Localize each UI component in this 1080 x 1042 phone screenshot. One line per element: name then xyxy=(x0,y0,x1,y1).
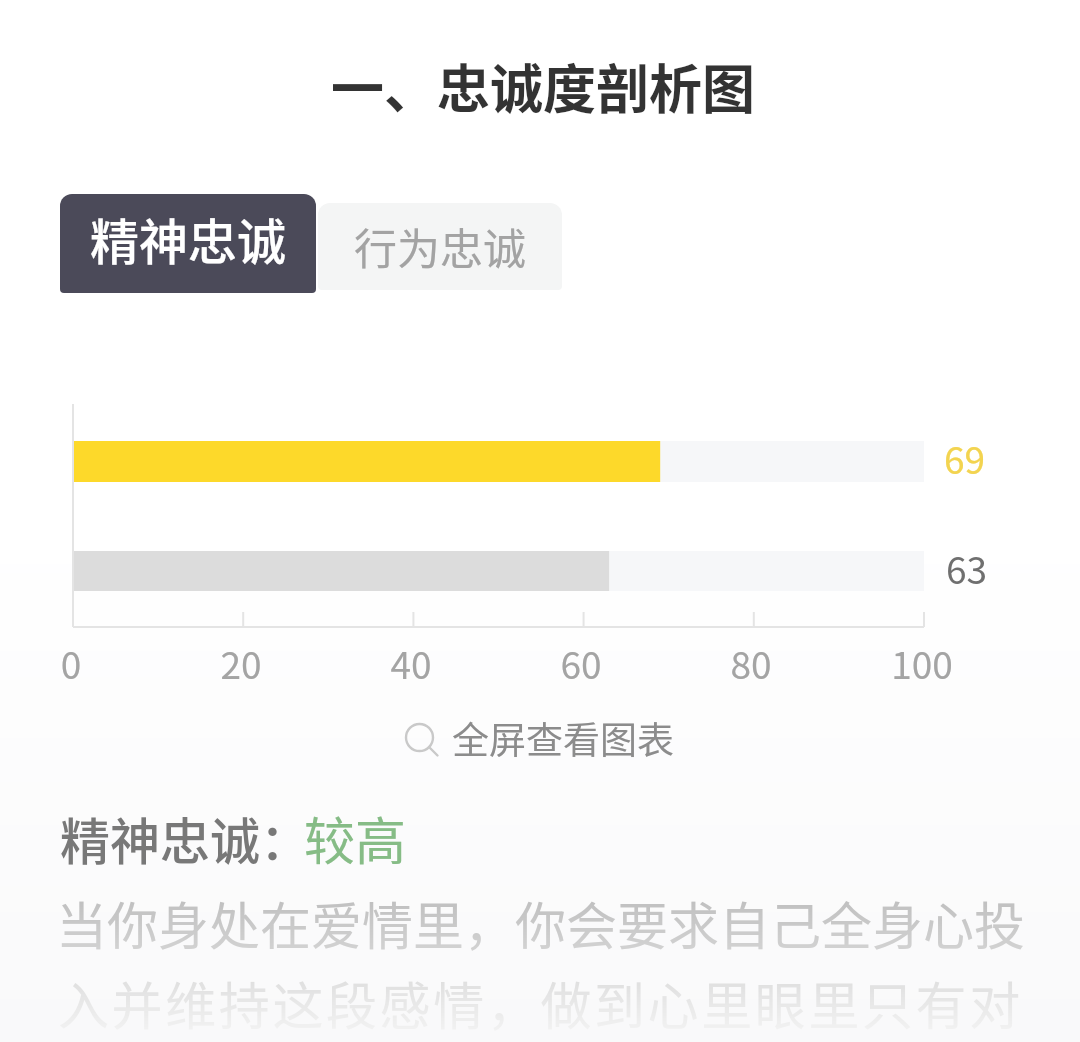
staticText: 20 xyxy=(141,636,341,690)
staticText: 100 xyxy=(822,636,1022,690)
button[interactable]: 精神忠诚 xyxy=(60,194,316,293)
staticText: 全屏查看图表 xyxy=(452,711,674,765)
staticText: 60 xyxy=(481,636,681,690)
staticText: 精神忠诚： xyxy=(60,802,310,874)
staticText: 0 xyxy=(0,636,171,690)
staticText: 80 xyxy=(651,636,851,690)
staticText: 较高 xyxy=(304,801,407,875)
staticText: 当你身处在爱情里，你会要求自己全身心投 xyxy=(56,886,1026,960)
staticText: 行为忠诚 xyxy=(354,215,526,277)
staticText: 40 xyxy=(311,636,511,690)
button[interactable]: 行为忠诚 xyxy=(318,203,562,290)
button[interactable]: 全屏查看图表 xyxy=(396,707,686,769)
staticText: 69 xyxy=(944,431,986,485)
staticText: 一、忠诚度剖析图 xyxy=(3,48,1080,1042)
staticText: 入并维持这段感情，做到心里眼里只有对 xyxy=(58,966,1023,1040)
staticText: 63 xyxy=(946,541,988,595)
staticText: 精神忠诚 xyxy=(90,203,287,274)
